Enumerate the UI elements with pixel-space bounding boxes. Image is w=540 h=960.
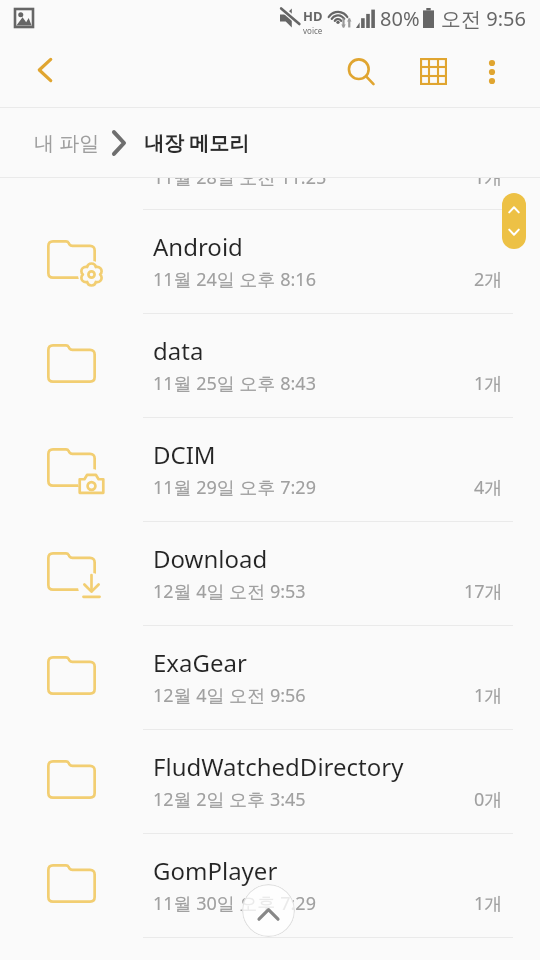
button[interactable]: 내장 메모리 xyxy=(144,129,250,156)
staticText: 17개 xyxy=(464,579,503,604)
staticText: 2개 xyxy=(474,267,503,292)
staticText: 80% xyxy=(380,5,420,32)
staticText: 11월 30일 오후 7:29 xyxy=(153,891,316,916)
staticText: 11월 29일 오후 7:29 xyxy=(153,475,316,500)
staticText: 12월 4일 오전 9:53 xyxy=(153,579,306,604)
staticText: GomPlayer xyxy=(153,854,278,887)
staticText: 11월 28일 오전 11:25 xyxy=(153,178,327,190)
button[interactable]: Download xyxy=(0,522,540,626)
button[interactable]: DCIM xyxy=(0,418,540,522)
button[interactable]: Scroll to top xyxy=(242,884,295,937)
button[interactable]: GomPlayer xyxy=(0,834,540,938)
button[interactable]: Android xyxy=(0,210,540,314)
staticText: 4개 xyxy=(474,475,503,500)
staticText: data xyxy=(153,334,204,367)
staticText: 11월 25일 오후 8:43 xyxy=(153,371,316,396)
button[interactable]: FludWatchedDirectory xyxy=(0,730,540,834)
button[interactable]: Back xyxy=(22,47,68,93)
staticText: FludWatchedDirectory xyxy=(153,750,404,783)
staticText: voice xyxy=(303,25,323,36)
staticText: 0개 xyxy=(474,787,503,812)
button[interactable]: 내 파일 xyxy=(34,129,100,156)
staticText: 오전 9:56 xyxy=(441,5,526,32)
staticText: ExaGear xyxy=(153,646,247,679)
staticText: DCIM xyxy=(153,438,216,471)
staticText: 12월 2일 오후 3:45 xyxy=(153,787,306,812)
staticText: 12월 4일 오전 9:56 xyxy=(153,683,306,708)
staticText: 1개 xyxy=(474,683,503,708)
staticText: 1개 xyxy=(474,891,503,916)
button[interactable]: Search xyxy=(335,45,387,97)
button[interactable]: Grid view xyxy=(407,45,459,97)
staticText: 11월 24일 오후 8:16 xyxy=(153,267,316,292)
button[interactable]: ExaGear xyxy=(0,626,540,730)
staticText: HD xyxy=(303,7,323,25)
staticText: 1개 xyxy=(474,371,503,396)
staticText: 1개 xyxy=(474,178,503,190)
button[interactable]: data xyxy=(0,314,540,418)
button[interactable]: Scroll bar xyxy=(502,193,526,249)
button[interactable]: More options xyxy=(466,46,518,98)
staticText: Download xyxy=(153,542,268,575)
staticText: Android xyxy=(153,230,243,263)
